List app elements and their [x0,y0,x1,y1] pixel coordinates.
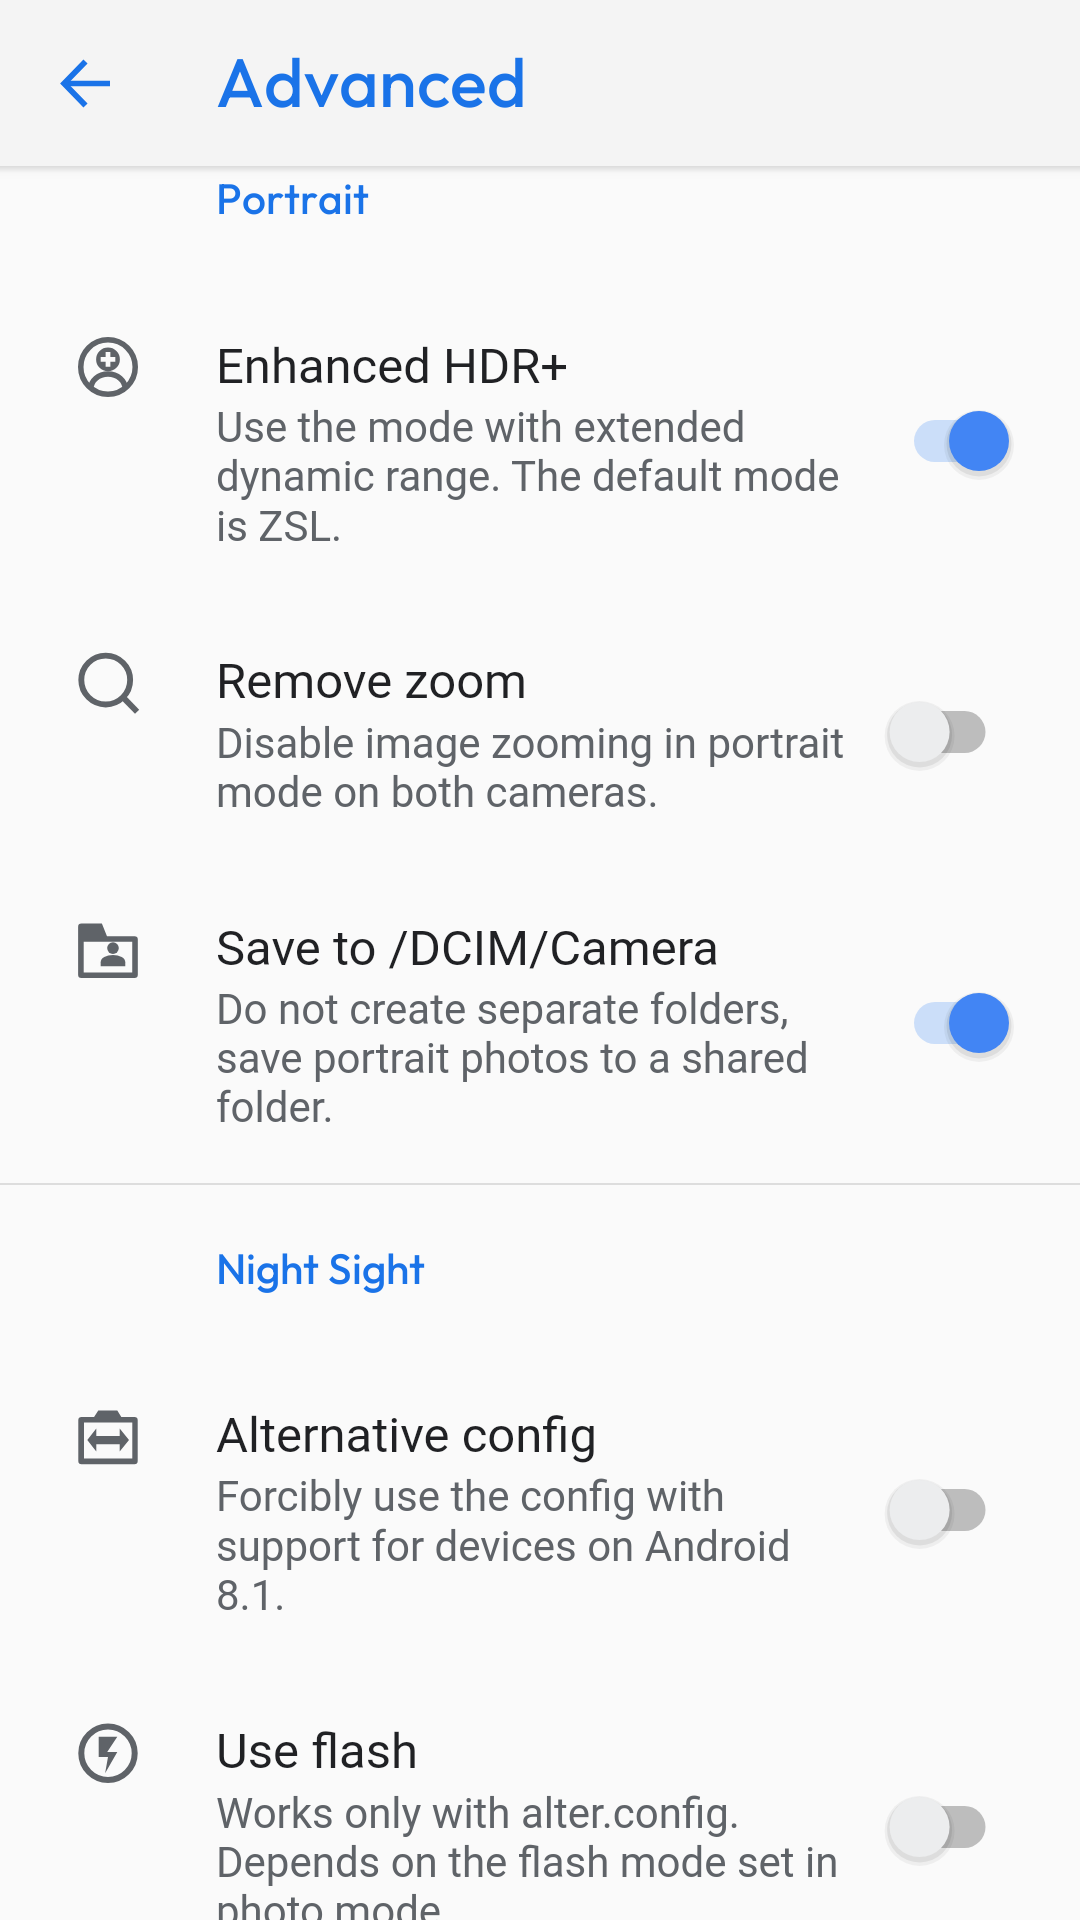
button[interactable] [0,874,1080,1171]
staticText: Depends on the flash mode set in [216,1838,839,1887]
staticText: Works only with alter.config. [216,1789,740,1838]
button[interactable] [0,292,1080,589]
staticText: folder. [216,1083,334,1132]
staticText: Use the mode with extended [216,403,746,452]
staticText: mode on both cameras. [216,768,659,817]
staticText: dynamic range. The default mode [216,452,840,501]
staticText: Use flash [216,1723,418,1780]
button[interactable] [0,1361,1080,1658]
staticText: Alternative config [216,1407,598,1464]
staticText: Enhanced HDR+ [216,338,569,395]
staticText: support for devices on Android [216,1522,791,1571]
button[interactable] [0,1677,1080,1920]
button[interactable]: Use flash, off [894,1777,1034,1877]
staticText: Do not create separate folders, [216,985,789,1034]
button[interactable]: Remove zoom, off [894,682,1034,782]
staticText: 8.1. [216,1571,286,1620]
staticText: Save to /DCIM/Camera [216,920,719,977]
staticText: is ZSL. [216,502,343,551]
button[interactable]: Enhanced HDR+, on [894,391,1034,491]
staticText: photo mode. [216,1887,453,1920]
staticText: Disable image zooming in portrait [216,719,845,768]
button[interactable]: Save to /DCIM/Camera, on [894,973,1034,1073]
staticText: Remove zoom [216,653,528,710]
staticText: Forcibly use the config with [216,1472,726,1521]
button[interactable] [0,607,1080,855]
button[interactable]: Navigate up [37,35,133,131]
staticText: save portrait photos to a shared [216,1034,809,1083]
button[interactable]: Alternative config, off [894,1460,1034,1560]
